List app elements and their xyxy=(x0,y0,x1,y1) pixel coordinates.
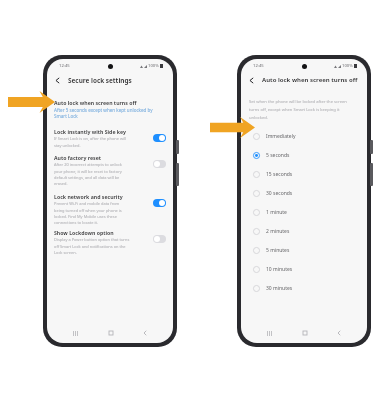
staticText: Prevent Wi-Fi and mobile data from being… xyxy=(54,201,130,225)
button[interactable]: Show Lockdown option xyxy=(47,229,173,255)
staticText: Lock instantly with Side key xyxy=(54,128,127,135)
button[interactable]: Recent apps xyxy=(263,327,276,339)
button[interactable]: Off xyxy=(153,235,166,243)
button[interactable]: 10 minutes xyxy=(241,264,367,275)
button[interactable]: 5 seconds xyxy=(241,150,367,161)
button[interactable]: Auto lock when screen turns off xyxy=(47,99,173,119)
staticText: After 20 incorrect attempts to unlock yo… xyxy=(54,162,130,186)
button[interactable]: Auto factory reset xyxy=(47,154,173,186)
button[interactable]: Recent apps xyxy=(69,327,82,339)
staticText: 5 seconds xyxy=(266,152,290,159)
staticText: If Smart Lock is on, after the phone wil… xyxy=(54,136,130,148)
button[interactable]: 30 seconds xyxy=(241,188,367,199)
staticText: Display a Power button option that turns… xyxy=(54,237,130,255)
staticText: 15 seconds xyxy=(266,171,293,178)
staticText: 10 minutes xyxy=(266,266,293,273)
staticText: 5 minutes xyxy=(266,247,290,254)
button[interactable]: Back xyxy=(332,327,345,339)
staticText: Auto factory reset xyxy=(54,154,101,161)
button[interactable]: Navigate up xyxy=(246,75,257,86)
button[interactable]: Navigate up xyxy=(52,75,63,86)
staticText: Auto lock when screen turns off xyxy=(54,99,137,106)
staticText: 30 minutes xyxy=(266,285,293,292)
staticText: 12:45 xyxy=(59,63,70,69)
button[interactable]: Lock network and security xyxy=(47,193,173,225)
button[interactable]: 30 minutes xyxy=(241,283,367,294)
staticText: 2 minutes xyxy=(266,228,290,235)
button[interactable]: Home xyxy=(298,327,311,339)
button[interactable]: On xyxy=(153,134,166,142)
staticText: 100% xyxy=(148,63,159,69)
staticText: 100% xyxy=(342,63,353,69)
staticText: 12:45 xyxy=(253,63,264,69)
staticText: 30 seconds xyxy=(266,190,293,197)
button[interactable]: Off xyxy=(153,160,166,168)
staticText: Set when the phone will be locked after … xyxy=(249,99,358,120)
button[interactable]: Back xyxy=(138,327,151,339)
staticText: Show Lockdown option xyxy=(54,229,114,236)
button[interactable]: On xyxy=(153,199,166,207)
staticText: After 5 seconds except when kept unlocke… xyxy=(54,107,162,119)
staticText: Secure lock settings xyxy=(68,76,132,85)
button[interactable]: 1 minute xyxy=(241,207,367,218)
staticText: Immediately xyxy=(266,133,296,140)
staticText: Auto lock when screen turns off xyxy=(262,76,358,84)
staticText: 1 minute xyxy=(266,209,287,216)
staticText: Lock network and security xyxy=(54,193,123,200)
button[interactable]: 15 seconds xyxy=(241,169,367,180)
button[interactable]: 2 minutes xyxy=(241,226,367,237)
button[interactable]: 5 minutes xyxy=(241,245,367,256)
button[interactable]: Immediately xyxy=(241,131,367,142)
button[interactable]: Home xyxy=(104,327,117,339)
button[interactable]: Lock instantly with Side key xyxy=(47,128,173,148)
